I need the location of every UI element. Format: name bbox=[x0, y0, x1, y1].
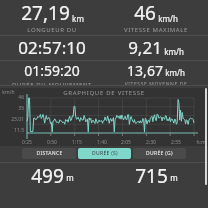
staticText: km/h bbox=[164, 46, 184, 57]
staticText: 23.01 bbox=[2, 116, 24, 123]
staticText: 13,67 bbox=[127, 61, 163, 80]
staticText: 0:50 bbox=[47, 139, 57, 146]
staticText: h:m bbox=[196, 139, 206, 146]
staticText: 2:05 bbox=[121, 139, 131, 146]
staticText: 1:15 bbox=[72, 139, 82, 146]
staticText: 01:59:20 bbox=[24, 61, 80, 80]
button[interactable]: 27,19 bbox=[0, 0, 104, 35]
staticText: LONGUEUR DU PARCOURS bbox=[0, 26, 104, 35]
button[interactable]: DURÉE (G) bbox=[133, 148, 186, 159]
staticText: km/h bbox=[158, 13, 178, 24]
staticText: 9,21 bbox=[128, 36, 162, 59]
staticText: m bbox=[66, 172, 74, 183]
staticText: km/h bbox=[2, 89, 15, 96]
staticText: 1:40 bbox=[97, 139, 107, 146]
button[interactable]: 46 bbox=[104, 0, 208, 34]
staticText: DURÉE (G) bbox=[146, 150, 173, 157]
staticText: 46 bbox=[2, 94, 24, 101]
staticText: 11.5 bbox=[2, 127, 24, 134]
staticText: DURÉE DU MOUVEMENT bbox=[0, 81, 104, 85]
staticText: 0:25 bbox=[22, 139, 32, 146]
staticText: 35 bbox=[2, 105, 24, 112]
button[interactable]: DURÉE (S) bbox=[78, 148, 131, 159]
button[interactable]: DISTANCE bbox=[22, 148, 76, 159]
staticText: DURÉE (S) bbox=[92, 150, 118, 157]
staticText: 02:57:10 bbox=[18, 36, 86, 59]
button[interactable]: 02:57:10 bbox=[0, 36, 104, 60]
staticText: 2:55 bbox=[171, 139, 181, 146]
staticText: 499 bbox=[31, 163, 64, 185]
staticText: VITESSE MAXIMALE bbox=[104, 26, 208, 34]
staticText: m bbox=[170, 172, 178, 183]
button[interactable]: 715 bbox=[104, 163, 208, 185]
button[interactable]: 499 bbox=[0, 163, 104, 185]
staticText: km/h bbox=[165, 67, 185, 78]
button[interactable]: 01:59:20 bbox=[0, 61, 104, 85]
staticText: 2:30 bbox=[146, 139, 156, 146]
staticText: 27,19 bbox=[21, 0, 70, 26]
staticText: DISTANCE bbox=[36, 150, 63, 157]
button[interactable]: 9,21 bbox=[104, 36, 208, 60]
staticText: VITESSE MOYENNE DE DÉPLACEMENT bbox=[104, 81, 208, 85]
button[interactable]: Graphique de vitesse bbox=[0, 88, 208, 146]
staticText: km bbox=[72, 13, 84, 24]
staticText: 46 bbox=[134, 0, 156, 26]
staticText: 715 bbox=[135, 163, 168, 185]
staticText: GRAPHIQUE DE VITESSE bbox=[63, 89, 145, 97]
button[interactable]: 13,67 bbox=[104, 61, 208, 85]
